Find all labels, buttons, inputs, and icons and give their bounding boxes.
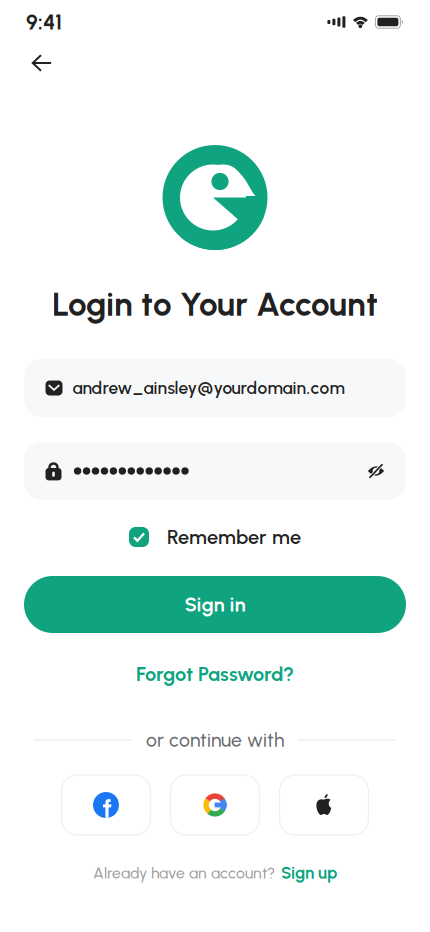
button[interactable]: Show password bbox=[367, 463, 384, 478]
staticText: Remember me bbox=[167, 525, 301, 549]
staticText: Already have an account? bbox=[93, 864, 275, 882]
button[interactable]: Sign up bbox=[281, 863, 337, 883]
button[interactable]: Remember me bbox=[129, 522, 301, 552]
button[interactable]: Continue with Apple bbox=[279, 775, 368, 835]
button[interactable]: Continue with Facebook bbox=[61, 775, 150, 835]
button[interactable]: Forgot Password? bbox=[136, 661, 294, 687]
staticText: or continue with bbox=[146, 728, 284, 752]
staticText: Sign up bbox=[281, 863, 337, 883]
staticText: Login to Your Account bbox=[52, 284, 378, 324]
staticText: Forgot Password? bbox=[136, 662, 294, 686]
staticText: Sign in bbox=[184, 592, 245, 616]
button[interactable]: Sign in bbox=[24, 576, 406, 633]
button[interactable]: Back bbox=[24, 45, 60, 81]
staticText: 9:41 bbox=[26, 9, 62, 35]
staticText: andrew_ainsley@yourdomain.com bbox=[72, 378, 344, 398]
button[interactable]: Continue with Google bbox=[170, 775, 259, 835]
